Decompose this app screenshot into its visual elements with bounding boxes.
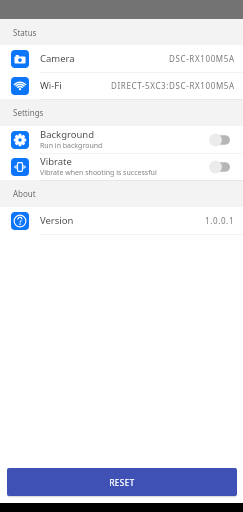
- staticText: DIRECT-5XC3:DSC-RX100M5A: [111, 80, 235, 91]
- button[interactable]: RESET: [7, 468, 237, 496]
- button[interactable]: Vibrate: [0, 153, 243, 180]
- staticText: Status: [13, 27, 37, 38]
- button[interactable]: Camera: [0, 45, 243, 72]
- staticText: RESET: [109, 477, 135, 488]
- staticText: Settings: [13, 107, 44, 118]
- button[interactable]: [209, 160, 230, 174]
- button[interactable]: Wi-Fi: [0, 72, 243, 99]
- staticText: 1.0.0.1: [205, 215, 235, 226]
- staticText: Run in background: [40, 141, 103, 151]
- staticText: Vibrate: [40, 155, 72, 168]
- button[interactable]: Background: [0, 126, 243, 153]
- staticText: Vibrate when shooting is successful: [40, 168, 157, 178]
- staticText: About: [13, 188, 36, 199]
- staticText: DSC-RX100M5A: [169, 53, 235, 64]
- staticText: Wi-Fi: [40, 79, 62, 92]
- button[interactable]: [209, 133, 230, 147]
- staticText: Background: [40, 128, 95, 141]
- staticText: Version: [40, 214, 74, 227]
- staticText: Camera: [40, 52, 75, 65]
- button[interactable]: Version: [0, 207, 243, 234]
